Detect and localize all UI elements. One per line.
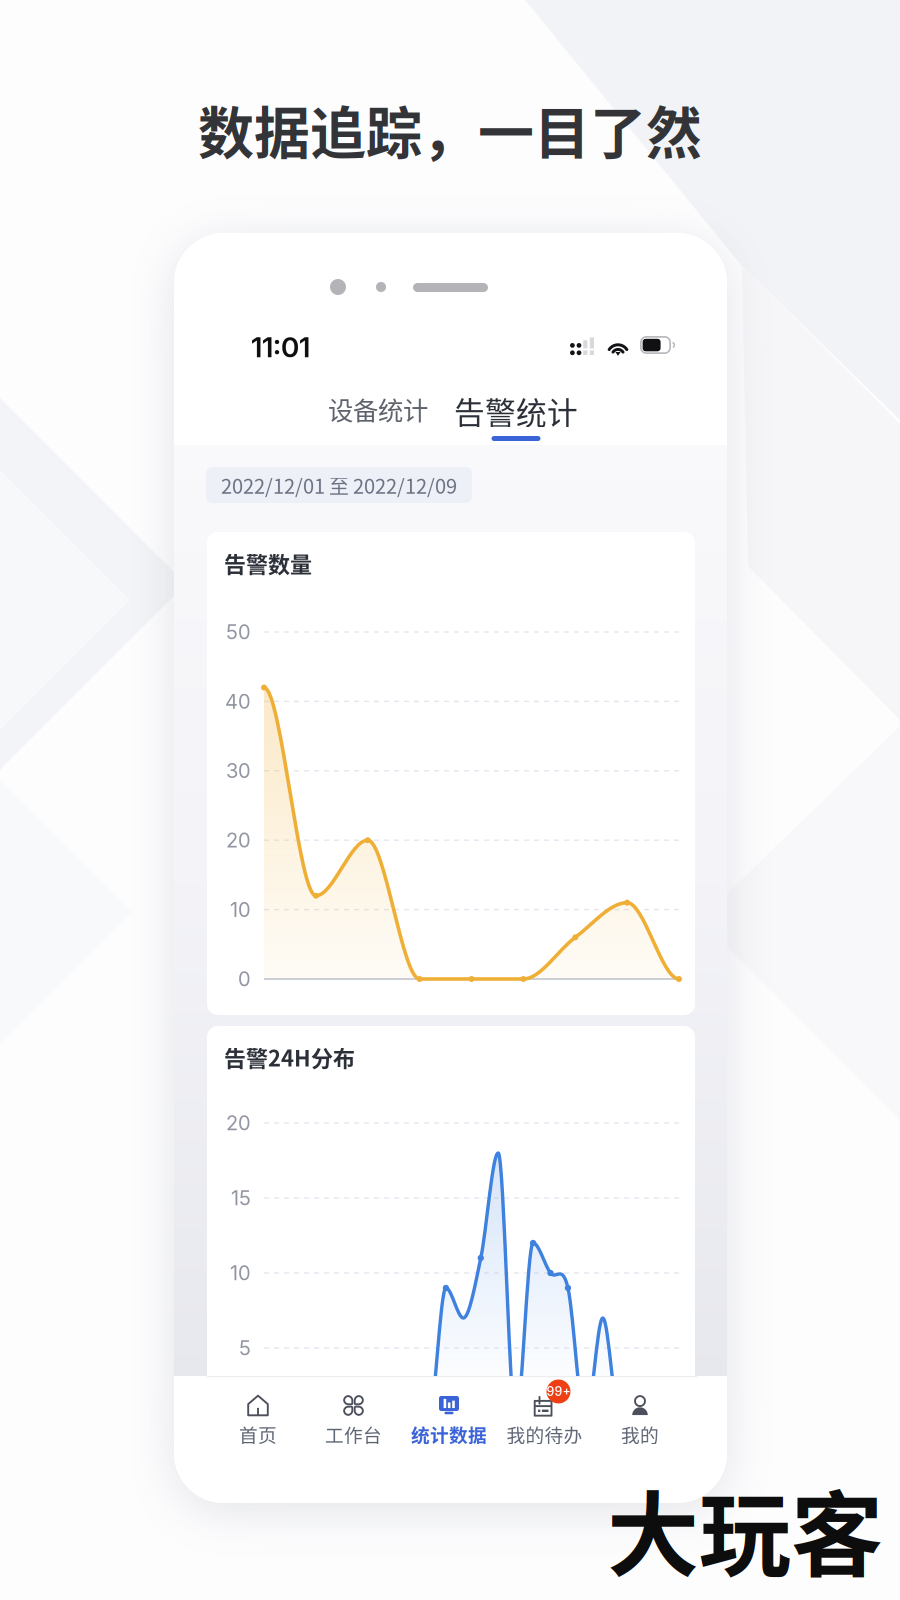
staticText: 统计数据 [411, 1420, 487, 1447]
button[interactable]: 99+ [497, 1395, 592, 1447]
staticText: 我的 [621, 1420, 659, 1447]
staticText: 10 [230, 1261, 251, 1285]
staticText: 99+ [546, 1384, 570, 1399]
staticText: 首页 [239, 1420, 277, 1447]
staticText: 0 [238, 967, 251, 991]
button[interactable]: 我的 [592, 1395, 688, 1447]
staticText: 20 [226, 1111, 251, 1135]
staticText: 20 [226, 828, 251, 852]
staticText: 大玩客 [607, 1462, 883, 1595]
staticText: 50 [226, 620, 251, 644]
staticText: 设备统计 [328, 391, 428, 427]
button[interactable]: 设备统计 [318, 383, 438, 435]
staticText: 告警统计 [454, 389, 578, 433]
staticText: 告警数量 [224, 547, 312, 579]
staticText: 11:01 [251, 330, 310, 364]
button[interactable]: 统计数据 [401, 1395, 497, 1447]
staticText: 15 [231, 1186, 251, 1210]
staticText: 我的待办 [506, 1420, 582, 1447]
staticText: 2022/12/01 至 2022/12/09 [221, 470, 457, 499]
staticText: 5 [239, 1336, 251, 1360]
staticText: 40 [225, 689, 251, 713]
button[interactable]: 告警统计 [446, 381, 586, 441]
button[interactable]: 首页 [210, 1395, 306, 1447]
button[interactable]: 工作台 [306, 1395, 401, 1447]
staticText: 30 [226, 759, 251, 783]
staticText: 10 [230, 897, 251, 922]
staticText: 工作台 [325, 1420, 382, 1447]
staticText: 数据追踪，一目了然 [198, 88, 702, 170]
staticText: 告警24H分布 [224, 1041, 355, 1073]
